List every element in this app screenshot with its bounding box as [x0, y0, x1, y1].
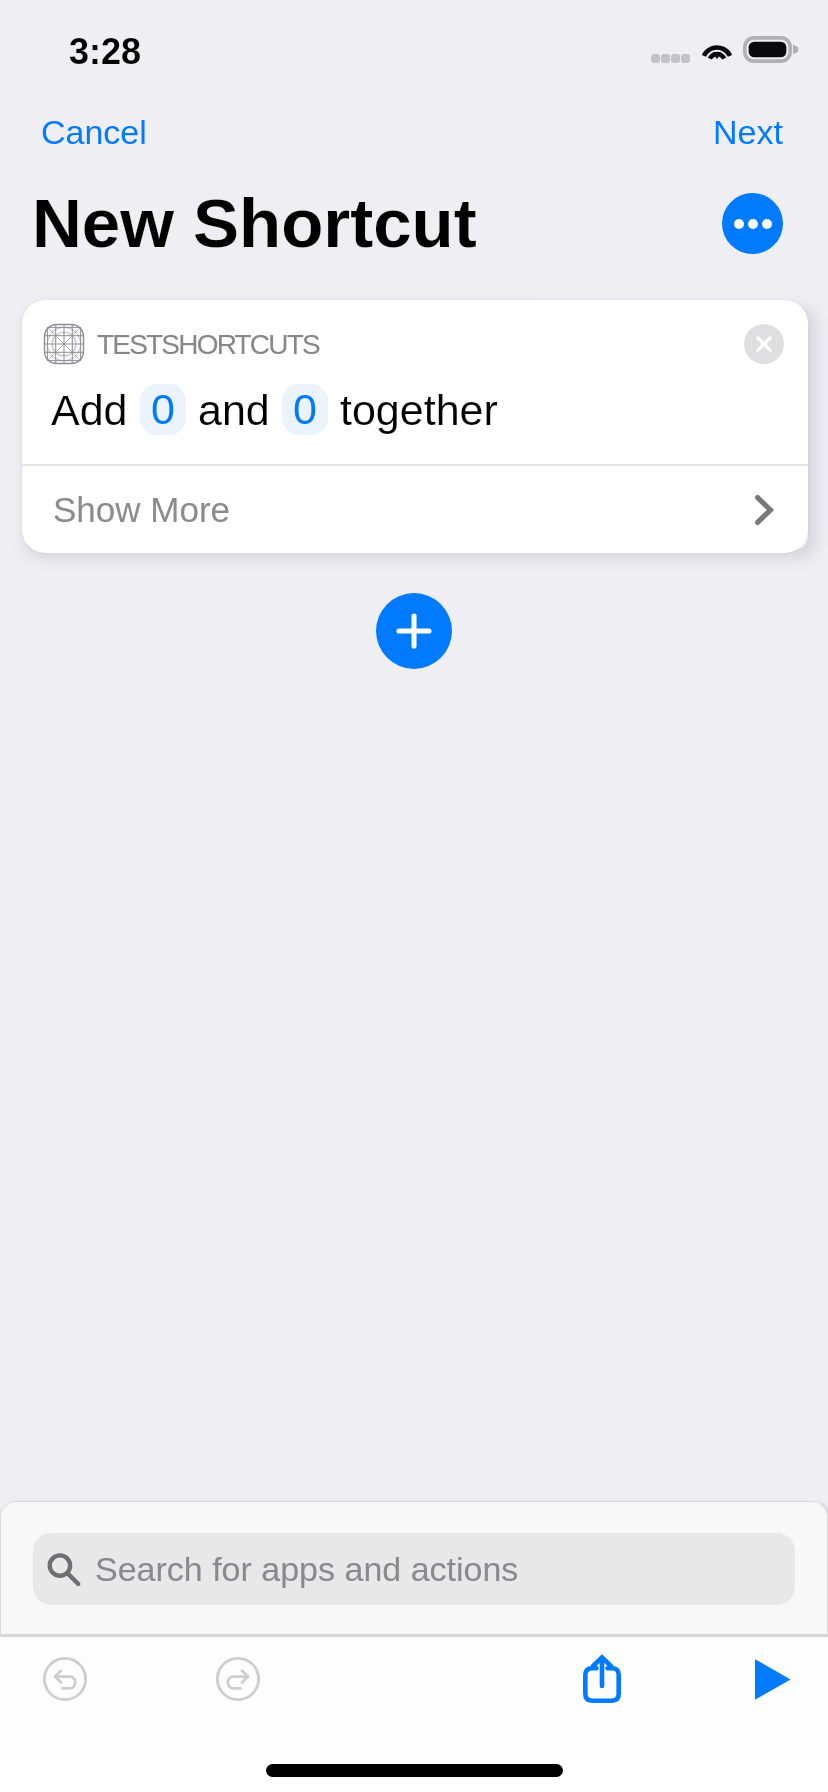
button[interactable]: Remove action: [744, 324, 784, 364]
staticText: 3:28: [69, 31, 142, 71]
button[interactable]: Cancel: [16, 104, 172, 160]
staticText: TESTSHORTCUTS: [97, 329, 319, 360]
button[interactable]: More options: [722, 193, 783, 254]
button[interactable]: Share: [565, 1642, 639, 1716]
staticText: New Shortcut: [32, 185, 477, 262]
staticText: Next: [713, 113, 783, 151]
button[interactable]: Add action: [376, 593, 452, 669]
button[interactable]: Next: [688, 104, 808, 160]
button[interactable]: 0: [140, 384, 186, 435]
staticText: and: [198, 386, 270, 434]
button[interactable]: Show More: [22, 466, 808, 553]
staticText: 0: [293, 385, 317, 433]
staticText: Search for apps and actions: [95, 1550, 519, 1588]
staticText: Add: [51, 386, 128, 434]
staticText: together: [340, 386, 498, 434]
button[interactable]: 0: [282, 384, 328, 435]
button[interactable]: Undo: [32, 1646, 98, 1712]
button[interactable]: Redo: [205, 1646, 271, 1712]
staticText: Show More: [53, 490, 231, 529]
button[interactable]: Run: [738, 1646, 804, 1712]
button[interactable]: Search for apps and actions: [33, 1533, 795, 1605]
staticText: Cancel: [41, 113, 147, 151]
staticText: 0: [151, 385, 175, 433]
